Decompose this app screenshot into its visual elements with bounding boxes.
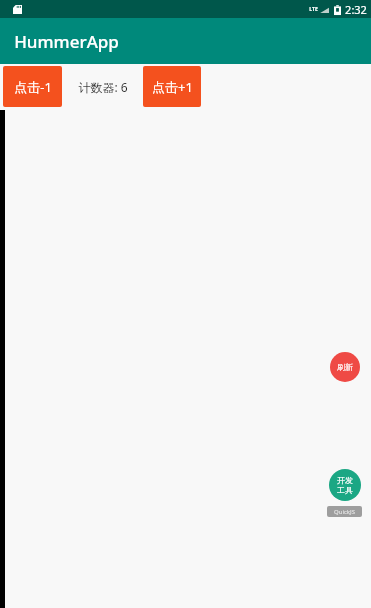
- staticText: HummerApp: [14, 30, 119, 53]
- staticText: 工具: [337, 485, 353, 495]
- button[interactable]: 开发工具: [329, 469, 361, 501]
- staticText: 点击-1: [14, 78, 52, 96]
- staticText: 刷新: [337, 362, 353, 372]
- staticText: 2:32: [345, 2, 367, 17]
- staticText: QuickJS: [334, 508, 355, 516]
- staticText: 开发: [337, 475, 353, 485]
- button[interactable]: 点击+1: [143, 66, 201, 107]
- staticText: 计数器: 6: [78, 79, 128, 95]
- staticText: 点击+1: [152, 78, 193, 96]
- staticText: LTE: [309, 6, 318, 13]
- button[interactable]: 刷新: [330, 352, 360, 382]
- button[interactable]: 点击-1: [3, 66, 62, 107]
